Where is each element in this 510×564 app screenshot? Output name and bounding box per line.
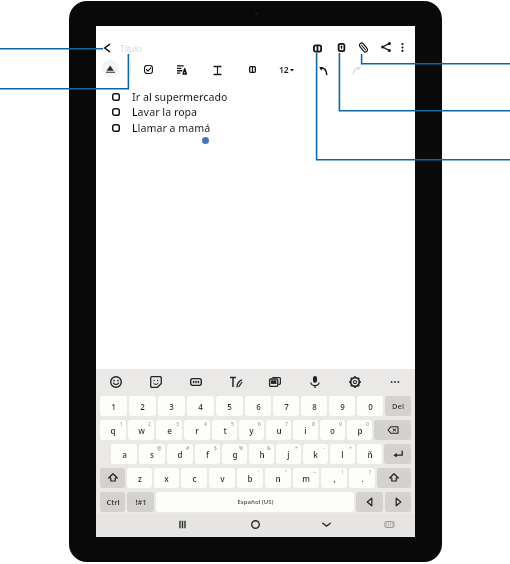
button[interactable]: More options — [396, 41, 409, 54]
button[interactable]: s — [139, 444, 165, 464]
button[interactable]: r — [184, 420, 210, 440]
button[interactable]: Emoji — [106, 372, 126, 392]
button[interactable]: Keyboard layout — [379, 514, 399, 534]
button[interactable]: 5 — [216, 396, 243, 416]
button[interactable]: t — [212, 420, 237, 440]
staticText: t — [223, 425, 227, 436]
button[interactable]: g — [222, 444, 247, 464]
button[interactable]: Handwriting — [226, 372, 246, 392]
button[interactable]: 4 — [187, 396, 214, 416]
button[interactable]: Lavar la ropa — [112, 104, 198, 119]
button[interactable]: w — [128, 420, 154, 440]
button[interactable]: Ir al supermercado — [112, 89, 228, 104]
staticText: q — [110, 425, 116, 436]
button[interactable]: More options — [385, 372, 405, 392]
button[interactable]: c — [181, 468, 207, 488]
button[interactable]: Settings — [345, 372, 365, 392]
button[interactable]: d — [167, 444, 193, 464]
staticText: @ — [157, 445, 162, 452]
staticText: 5 — [231, 421, 234, 428]
button[interactable]: 7 — [273, 396, 299, 416]
button[interactable]: GIF — [186, 372, 206, 392]
staticText: Llamar a mamá — [132, 121, 211, 135]
button[interactable]: 9 — [329, 396, 355, 416]
button[interactable]: ñ — [357, 444, 382, 464]
button[interactable]: Hide keyboard — [316, 514, 336, 534]
button[interactable]: Voice input — [305, 372, 325, 392]
button[interactable]: b — [237, 468, 263, 488]
button[interactable]: Checklist — [140, 61, 156, 77]
button[interactable]: Undo — [315, 62, 331, 78]
button[interactable]: Home — [245, 514, 265, 534]
button[interactable]: 0 — [357, 396, 383, 416]
staticText: " — [285, 469, 288, 476]
button[interactable]: e — [156, 420, 182, 440]
button[interactable]: !#1 — [127, 492, 154, 512]
button[interactable]: Redo — [348, 62, 364, 78]
button[interactable]: p — [347, 420, 372, 440]
button[interactable]: Move right — [385, 492, 411, 512]
button[interactable]: . — [349, 468, 375, 488]
button[interactable]: u — [266, 420, 291, 440]
button[interactable]: 12 — [279, 64, 294, 76]
staticText: d — [177, 449, 183, 460]
button[interactable]: v — [209, 468, 235, 488]
staticText: b — [247, 473, 253, 484]
button[interactable]: 6 — [245, 396, 271, 416]
button[interactable]: Español (US) — [156, 492, 354, 512]
button[interactable]: f — [195, 444, 220, 464]
button[interactable]: 1 — [100, 396, 127, 416]
button[interactable]: 2 — [129, 396, 156, 416]
button[interactable]: Back — [98, 39, 116, 57]
button[interactable]: Split view — [309, 40, 325, 56]
button[interactable]: n — [265, 468, 291, 488]
staticText: 3 — [176, 421, 179, 428]
button[interactable]: Page view — [333, 39, 349, 55]
button[interactable]: z — [127, 468, 152, 488]
button[interactable]: Ctrl — [100, 492, 125, 512]
button[interactable]: Recents — [172, 514, 192, 534]
button[interactable]: Shift — [100, 468, 125, 488]
button[interactable]: Move left — [356, 492, 383, 512]
button[interactable]: Shift — [377, 468, 411, 488]
button[interactable]: y — [239, 420, 264, 440]
staticText: , — [333, 473, 336, 484]
button[interactable]: x — [154, 468, 179, 488]
staticText: ' — [258, 469, 260, 476]
button[interactable]: Stickers — [146, 372, 166, 392]
button[interactable]: Llamar a mamá — [112, 120, 211, 135]
button[interactable]: Pen — [102, 60, 119, 77]
button[interactable]: Del — [385, 396, 411, 416]
button[interactable]: Share — [378, 39, 394, 55]
button[interactable]: q — [100, 420, 126, 440]
staticText: g — [232, 449, 238, 460]
staticText: n — [275, 473, 281, 484]
button[interactable]: i — [293, 420, 318, 440]
button[interactable]: Text style — [209, 62, 225, 78]
button[interactable]: k — [303, 444, 328, 464]
button[interactable]: 8 — [301, 396, 327, 416]
button[interactable]: , — [321, 468, 347, 488]
staticText: Ir al supermercado — [132, 90, 228, 104]
button[interactable]: 3 — [158, 396, 185, 416]
staticText: ~ — [313, 469, 316, 476]
staticText: $ — [214, 445, 217, 452]
button[interactable]: Enter — [384, 444, 411, 464]
staticText: 4 — [204, 421, 207, 428]
button[interactable]: a — [111, 444, 137, 464]
button[interactable]: o — [320, 420, 345, 440]
staticText: i — [304, 425, 307, 436]
staticText: z — [138, 473, 142, 484]
staticText: !#1 — [135, 497, 147, 507]
button[interactable]: Backspace — [374, 420, 411, 440]
button[interactable]: j — [276, 444, 301, 464]
button[interactable]: m — [293, 468, 319, 488]
staticText: 0 — [368, 401, 373, 412]
button[interactable]: l — [330, 444, 355, 464]
button[interactable]: Table — [244, 61, 260, 77]
button[interactable]: Paragraph style — [173, 61, 189, 77]
staticText: Ctrl — [106, 497, 120, 507]
button[interactable]: Attach — [355, 39, 371, 55]
button[interactable]: h — [249, 444, 274, 464]
button[interactable]: Clipboard — [265, 372, 285, 392]
